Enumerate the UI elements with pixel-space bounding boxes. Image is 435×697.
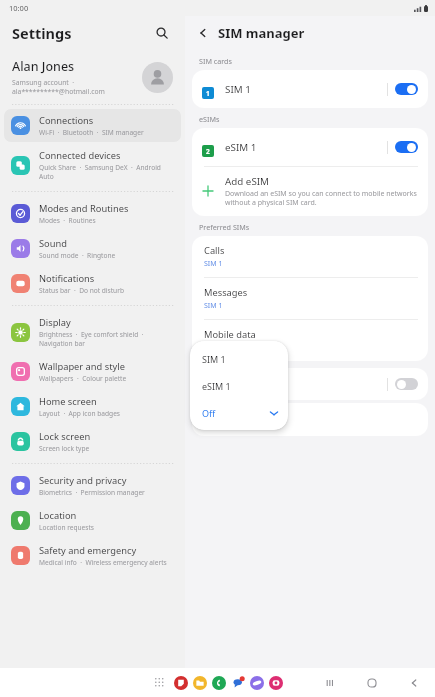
staticText: SIM 1 <box>204 259 223 269</box>
button[interactable]: Recents <box>321 674 339 692</box>
button[interactable]: 2 <box>192 128 428 166</box>
staticText: 10:00 <box>9 3 29 13</box>
staticText: SIM manager <box>218 24 305 42</box>
button[interactable]: Phone <box>209 673 228 692</box>
button[interactable]: Backup calling <box>192 368 428 400</box>
button[interactable]: Add eSIM <box>192 167 428 216</box>
button[interactable]: Toggle off <box>395 378 418 390</box>
staticText: eSIM 1 <box>225 141 387 154</box>
staticText: Wallpapers · Colour palette <box>39 374 127 383</box>
staticText: Preferred SIMs <box>199 222 250 232</box>
button[interactable]: More SIM settings <box>192 403 428 436</box>
button[interactable]: Display <box>4 311 181 353</box>
button[interactable]: Wallpaper and style <box>4 355 181 388</box>
staticText: Lock screen <box>39 430 91 443</box>
staticText: eSIM 1 <box>202 380 279 392</box>
staticText: Medical info · Wireless emergency alerts <box>39 558 167 567</box>
staticText: Download an eSIM so you can connect to m… <box>225 189 417 207</box>
staticText: Layout · App icon badges <box>39 409 121 418</box>
button[interactable]: Modes and Routines <box>4 197 181 230</box>
button[interactable]: Off <box>190 399 288 426</box>
button[interactable]: Mobile data <box>192 320 428 361</box>
staticText: Screen lock type <box>39 444 90 453</box>
button[interactable]: Apps <box>150 673 169 692</box>
button[interactable]: Connections <box>4 109 181 142</box>
button[interactable]: SIM 1 <box>190 345 288 372</box>
button[interactable]: Security and privacy <box>4 469 181 502</box>
button[interactable]: Messages <box>192 278 428 319</box>
staticText: Mobile data <box>204 328 256 341</box>
staticText: Connected devices <box>39 149 121 162</box>
button[interactable]: Back <box>193 23 213 43</box>
button[interactable]: Notes <box>171 673 190 692</box>
button[interactable]: Gallery <box>266 673 285 692</box>
button[interactable]: Search <box>151 22 173 44</box>
button[interactable]: Connected devices <box>4 144 181 186</box>
staticText: Modes and Routines <box>39 202 129 215</box>
staticText: Location requests <box>39 523 95 532</box>
staticText: More SIM settings <box>204 413 284 426</box>
staticText: Calls <box>204 244 225 257</box>
staticText: Backup calling <box>204 378 387 391</box>
staticText: Sound <box>39 237 67 250</box>
staticText: Wi-Fi · Bluetooth · SIM manager <box>39 128 144 137</box>
button[interactable]: Safety and emergency <box>4 539 181 572</box>
button[interactable]: Files <box>190 673 209 692</box>
staticText: ala**********@hotmail.com <box>12 87 105 96</box>
staticText: Connections <box>39 114 94 127</box>
staticText: eSIMs <box>199 114 220 124</box>
staticText: Biometrics · Permission manager <box>39 488 145 497</box>
button[interactable]: Toggle on <box>395 83 418 95</box>
staticText: Safety and emergency <box>39 544 137 557</box>
staticText: Off <box>202 407 269 419</box>
button[interactable]: Home <box>363 674 381 692</box>
staticText: Wallpaper and style <box>39 360 125 373</box>
staticText: Status bar · Do not disturb <box>39 286 124 295</box>
staticText: Samsung account · <box>12 78 75 87</box>
staticText: SIM 1 <box>204 301 223 311</box>
staticText: Modes · Routines <box>39 216 96 225</box>
staticText: Settings <box>12 23 72 43</box>
staticText: Add eSIM <box>225 175 269 188</box>
button[interactable]: Back <box>405 674 423 692</box>
staticText: 2 <box>206 147 210 156</box>
button[interactable]: Location <box>4 504 181 537</box>
button[interactable]: Messages <box>228 673 247 692</box>
staticText: Brightness · Eye comfort shield · Naviga… <box>39 330 174 348</box>
staticText: Security and privacy <box>39 474 127 487</box>
button[interactable]: Calls <box>192 236 428 277</box>
staticText: Display <box>39 316 71 329</box>
staticText: SIM 1 <box>202 353 279 365</box>
staticText: SIM cards <box>199 56 232 66</box>
button[interactable]: Toggle on <box>395 141 418 153</box>
staticText: Home screen <box>39 395 97 408</box>
button[interactable]: Sound <box>4 232 181 265</box>
staticText: Sound mode · Ringtone <box>39 251 116 260</box>
staticText: Quick Share · Samsung DeX · Android Auto <box>39 163 174 181</box>
button[interactable]: eSIM 1 <box>190 372 288 399</box>
staticText: Messages <box>204 286 248 299</box>
button[interactable]: Notifications <box>4 267 181 300</box>
staticText: Location <box>39 509 77 522</box>
button[interactable]: 1 <box>192 70 428 108</box>
staticText: Notifications <box>39 272 95 285</box>
button[interactable]: Lock screen <box>4 425 181 458</box>
button[interactable]: Home screen <box>4 390 181 423</box>
button[interactable]: Internet <box>247 673 266 692</box>
staticText: Alan Jones <box>12 58 75 75</box>
staticText: 1 <box>206 89 210 98</box>
button[interactable]: Alan Jones <box>0 50 185 104</box>
staticText: SIM 1 <box>225 83 387 96</box>
